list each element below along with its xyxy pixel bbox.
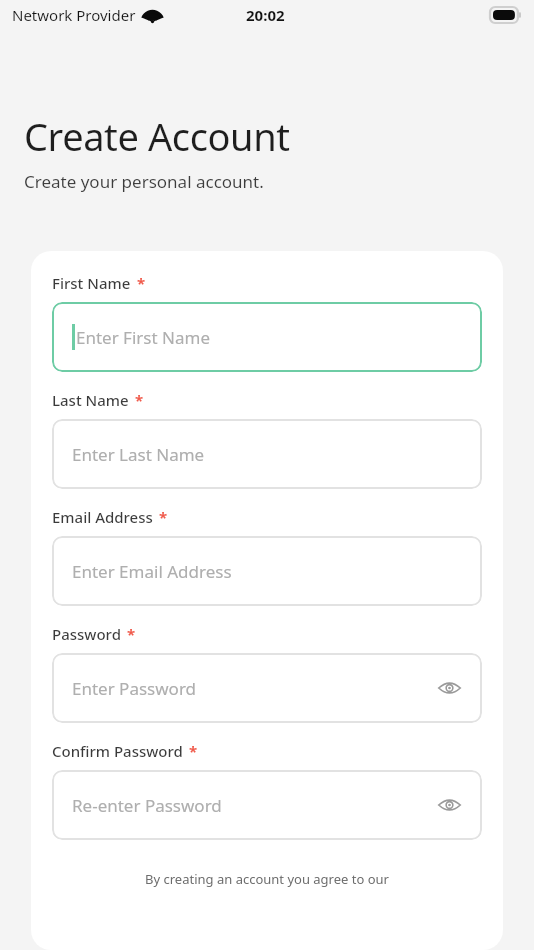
button[interactable]: Enter Password — [52, 653, 482, 723]
staticText: Last Name — [52, 390, 129, 410]
staticText: Create Account — [24, 110, 290, 162]
staticText: Enter First Name — [76, 326, 466, 349]
staticText: * — [135, 390, 144, 410]
staticText: By creating an account you agree to our — [52, 870, 482, 888]
staticText: Password — [52, 624, 121, 644]
staticText: Enter Password — [72, 677, 432, 700]
staticText: Confirm Password — [52, 741, 183, 761]
button[interactable]: Enter Last Name — [52, 419, 482, 489]
staticText: * — [137, 273, 146, 293]
staticText: 20:02 — [246, 5, 285, 25]
staticText: Enter Email Address — [72, 560, 466, 583]
staticText: * — [159, 507, 168, 527]
staticText: First Name — [52, 273, 131, 293]
staticText: Network Provider — [12, 5, 136, 25]
staticText: Re-enter Password — [72, 794, 432, 817]
staticText: Enter Last Name — [72, 443, 466, 466]
button[interactable]: Show password — [432, 788, 466, 822]
button[interactable]: Show password — [432, 671, 466, 705]
staticText: Email Address — [52, 507, 153, 527]
staticText: * — [189, 741, 198, 761]
button[interactable]: Enter Email Address — [52, 536, 482, 606]
staticText: * — [127, 624, 136, 644]
button[interactable]: Re-enter Password — [52, 770, 482, 840]
staticText: Create your personal account. — [24, 170, 264, 193]
button[interactable]: Enter First Name — [52, 302, 482, 372]
